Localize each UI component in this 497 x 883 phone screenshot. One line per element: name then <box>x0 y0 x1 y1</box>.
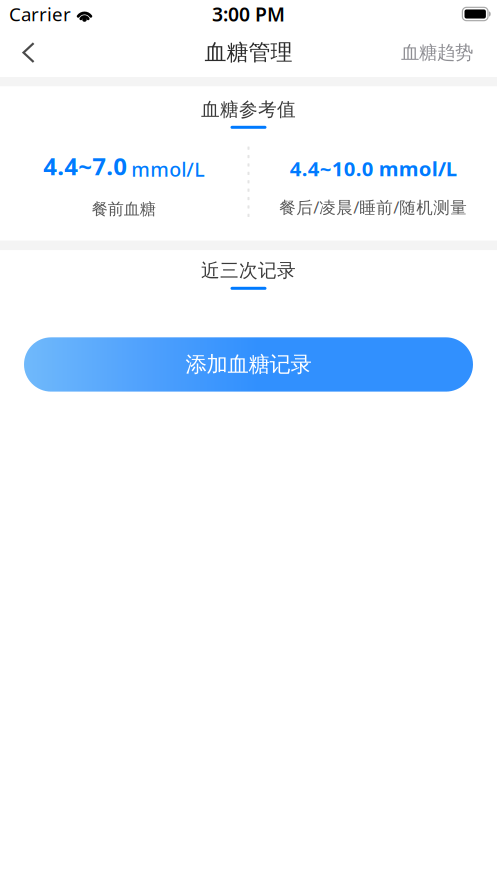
staticText: 餐前血糖 <box>92 199 156 219</box>
staticText: 4.4~7.0 <box>43 150 127 182</box>
staticText: 餐后/凌晨/睡前/随机测量 <box>279 196 467 218</box>
staticText: 3:00 PM <box>212 1 285 27</box>
staticText: 血糖管理 <box>204 39 292 66</box>
staticText: 4.4~10.0 mmol/L <box>290 155 457 182</box>
button[interactable]: 返回 <box>0 27 53 77</box>
staticText: 添加血糖记录 <box>185 351 311 378</box>
staticText: 近三次记录 <box>201 259 296 282</box>
button[interactable]: 添加血糖记录 <box>24 337 473 392</box>
staticText: 血糖趋势 <box>401 41 473 64</box>
button[interactable]: 血糖趋势 <box>383 27 497 77</box>
staticText: mmol/L <box>131 156 204 182</box>
staticText: 血糖参考值 <box>201 98 296 121</box>
staticText: Carrier <box>9 1 71 27</box>
